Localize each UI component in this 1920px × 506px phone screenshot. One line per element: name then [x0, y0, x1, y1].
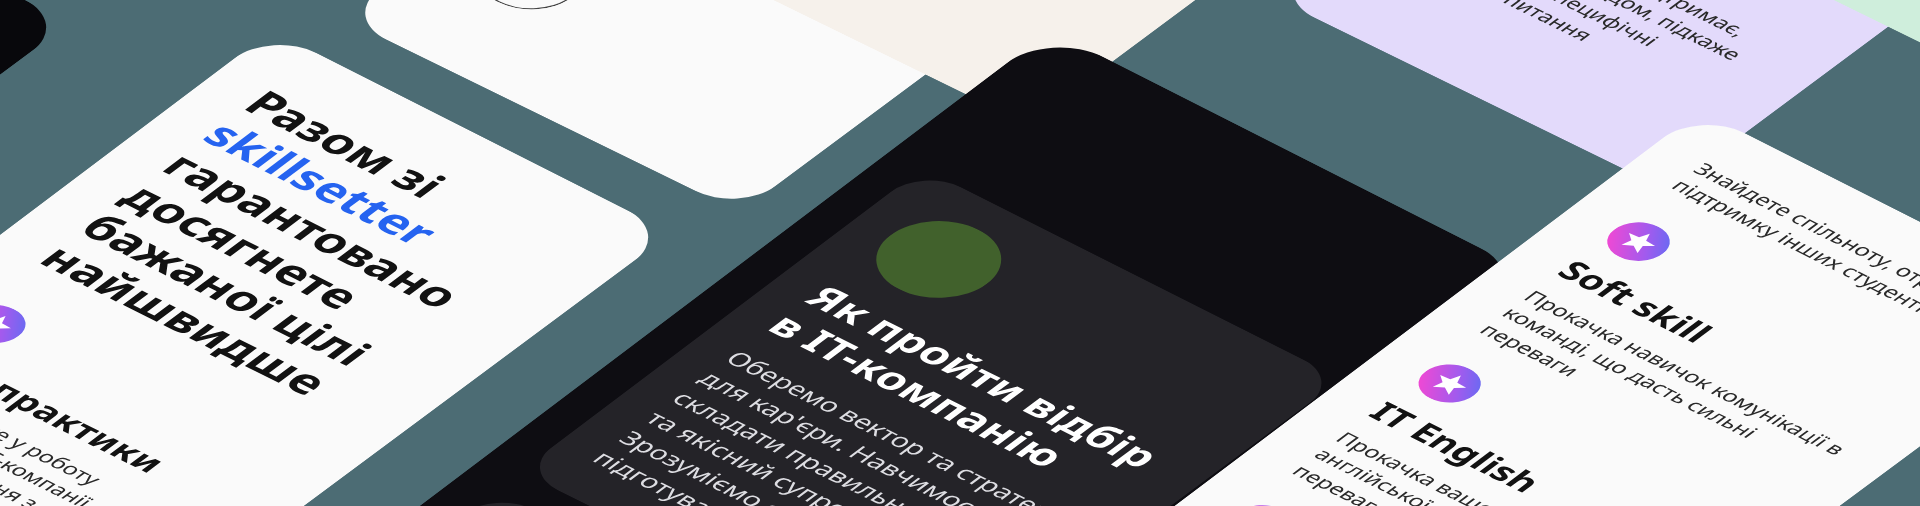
staticText: Разом зі skillsetter гарантовано досягне…: [27, 79, 600, 430]
staticText: 70% практики: [0, 334, 178, 480]
staticText: Прокачка навичок комунікації в команді, …: [1473, 285, 1861, 496]
staticText: Оберемо вектор та стратегію для кар'єри.…: [585, 345, 1100, 506]
staticText: Soft skill: [1548, 252, 1724, 350]
staticText: IT English: [1360, 394, 1553, 500]
staticText: Підтримка однодумців: [1490, 0, 1883, 42]
staticText: Ви поринете у роботу віртуальної IT-комп…: [0, 367, 217, 506]
staticText: Теорія та практика: [0, 496, 44, 506]
staticText: Команда завжди підтримає, поділиться дос…: [1394, 0, 1803, 113]
staticText: Прокачка вашого рівня англійської, створ…: [1286, 427, 1672, 506]
button[interactable]: Next: [458, 0, 604, 22]
staticText: Як пройти відбір в IT-компанію: [756, 275, 1192, 506]
staticText: Продакт менеджер в Tonti Laguna: [597, 0, 968, 38]
staticText: Знайдете спільноту, отримаєте підтримку …: [1665, 157, 1920, 353]
